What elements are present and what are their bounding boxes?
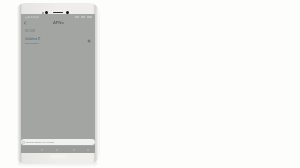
staticText: Vodafone IT: [25, 37, 41, 41]
staticText: ▲ ■ ● ■ ■: [25, 15, 39, 18]
staticText: APNs: [53, 20, 64, 26]
button[interactable]: Back: [21, 19, 29, 27]
staticText: Restored default APN settings: [26, 141, 55, 144]
staticText: web.omnitel: [25, 42, 39, 45]
button[interactable]: Recents: [38, 146, 46, 153]
button[interactable]: Vodafone IT: [21, 35, 95, 46]
button[interactable]: Home: [53, 146, 61, 153]
staticText: NO SIM: [25, 29, 36, 33]
button[interactable]: Back: [70, 146, 78, 153]
button[interactable]: Restored default APN settings: [21, 139, 95, 145]
button[interactable]: Menu: [84, 146, 92, 153]
